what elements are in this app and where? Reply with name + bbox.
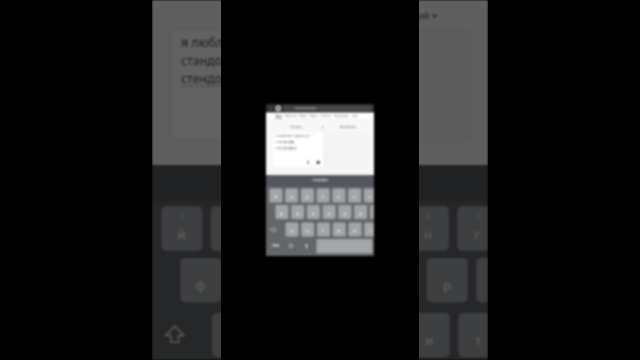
button[interactable]: Video player	[152, 0, 488, 360]
